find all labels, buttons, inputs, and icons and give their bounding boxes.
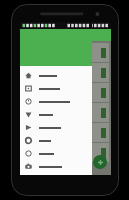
button[interactable] bbox=[20, 147, 92, 160]
button[interactable] bbox=[22, 143, 109, 162]
button[interactable] bbox=[22, 103, 109, 122]
button[interactable] bbox=[20, 108, 92, 121]
button[interactable] bbox=[22, 63, 109, 82]
button[interactable] bbox=[20, 121, 92, 134]
button[interactable] bbox=[22, 43, 109, 62]
button[interactable] bbox=[22, 83, 109, 102]
button[interactable] bbox=[20, 134, 92, 147]
button[interactable] bbox=[20, 82, 92, 95]
button[interactable] bbox=[20, 69, 92, 82]
button[interactable]: Add bbox=[93, 155, 107, 169]
button[interactable] bbox=[20, 160, 92, 173]
button[interactable] bbox=[20, 95, 92, 108]
button[interactable] bbox=[22, 123, 109, 142]
